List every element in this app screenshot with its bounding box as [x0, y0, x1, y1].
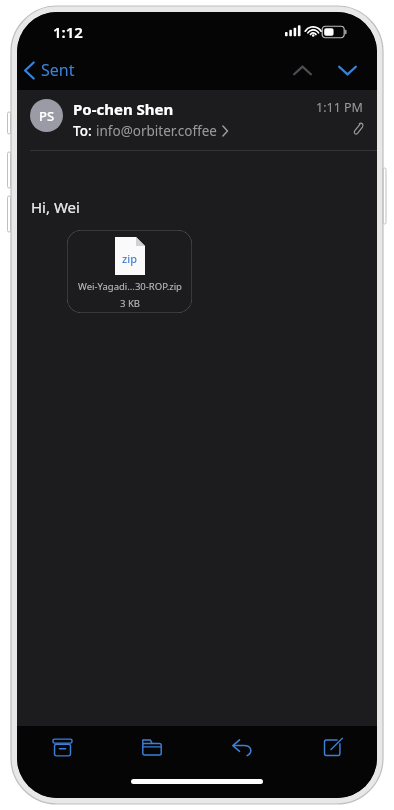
staticText: Sent: [41, 59, 75, 81]
staticText: PS: [39, 107, 55, 125]
staticText: info@orbiter.coffee: [96, 122, 217, 140]
button[interactable]: Reply: [197, 726, 287, 768]
button[interactable]: PS: [17, 90, 377, 150]
button[interactable]: Archive: [17, 726, 107, 768]
button[interactable]: Move to folder: [107, 726, 197, 768]
staticText: 3 KB: [120, 297, 140, 310]
staticText: Po-chen Shen: [73, 99, 174, 119]
button[interactable]: Compose: [287, 726, 377, 768]
staticText: Hi, Wei: [31, 197, 80, 217]
button[interactable]: Previous message: [279, 57, 326, 84]
button[interactable]: Sent: [17, 53, 85, 87]
staticText: 1:12: [53, 22, 83, 42]
button[interactable]: Next message: [326, 57, 377, 84]
staticText: Wei-Yagadi...30-ROP.zip: [78, 280, 182, 293]
staticText: To:: [73, 122, 96, 140]
staticText: zip: [122, 251, 138, 266]
staticText: 1:11 PM: [316, 99, 363, 116]
button[interactable]: zip: [67, 230, 192, 313]
